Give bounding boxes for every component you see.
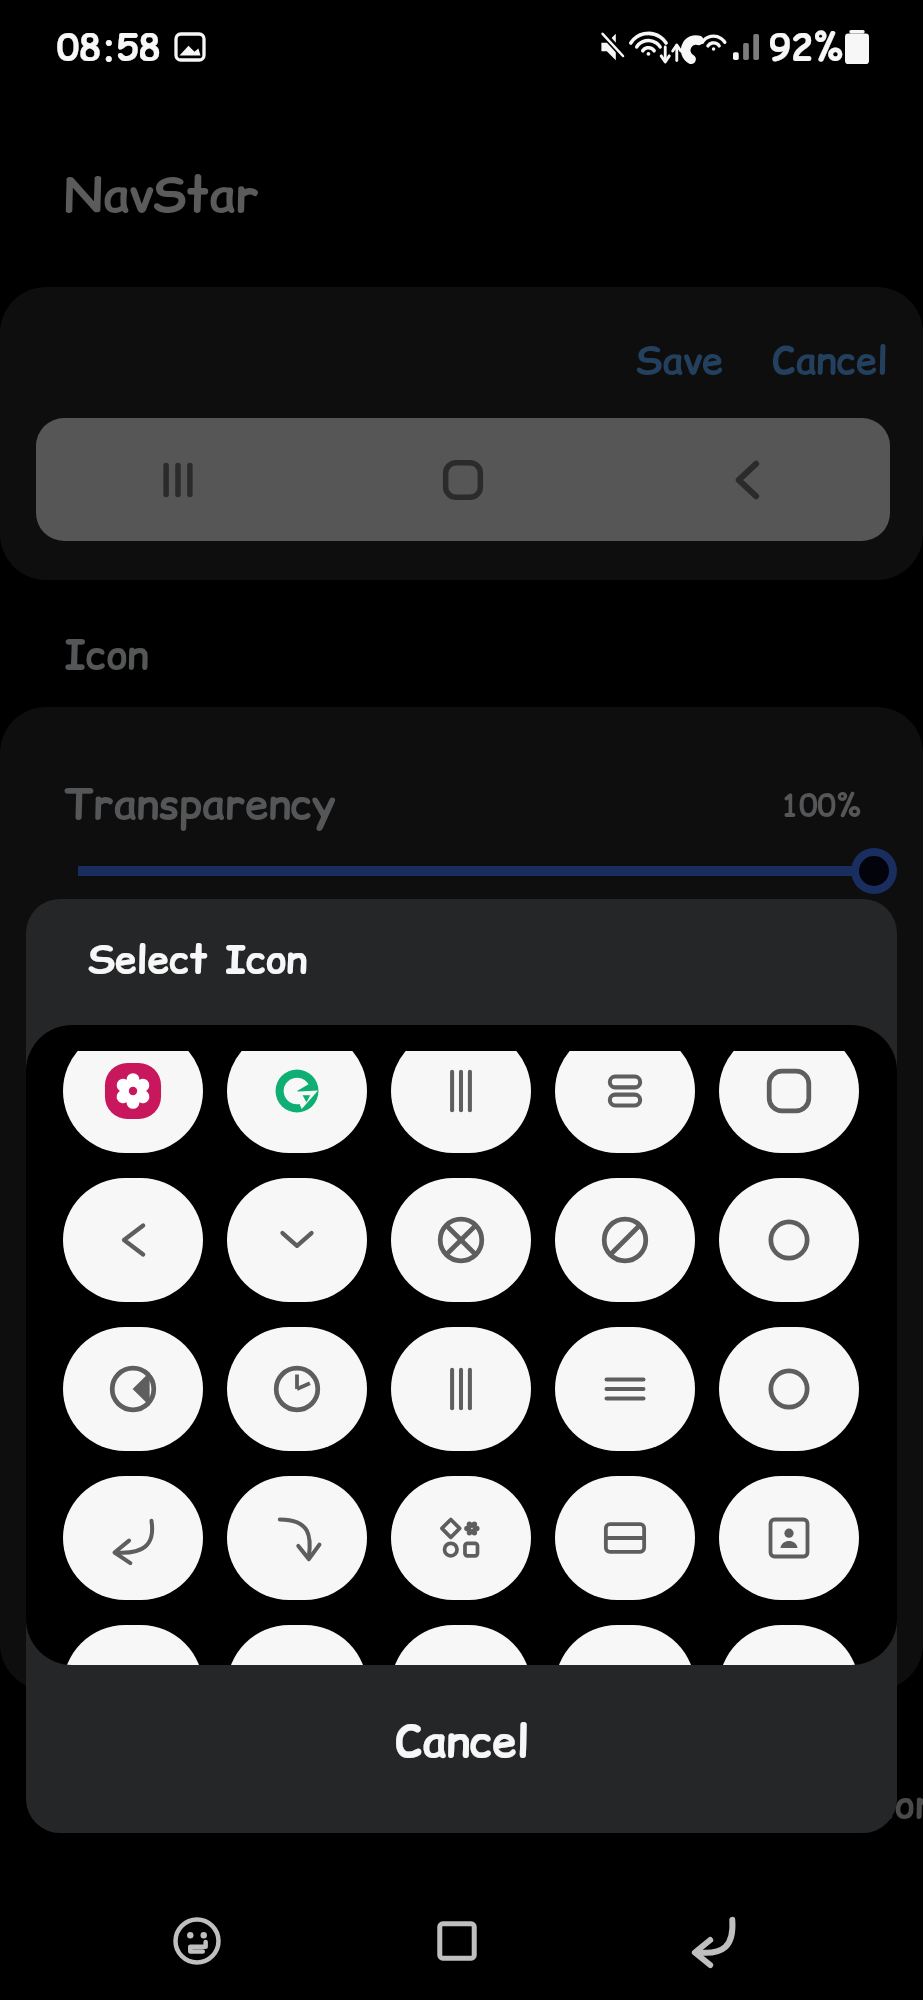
button[interactable]: Home: [320, 418, 605, 541]
button[interactable]: Icon option 23: [391, 1625, 531, 1665]
button[interactable]: Icon option 8: [391, 1178, 531, 1302]
button[interactable]: Icon option 17: [227, 1476, 367, 1600]
button[interactable]: Icon option 6: [63, 1178, 203, 1302]
button[interactable]: Icon option 4: [555, 1051, 695, 1153]
staticText: Save: [636, 334, 724, 387]
staticText: 08:58: [57, 22, 161, 72]
staticText: Cancel: [772, 334, 888, 387]
button[interactable]: Icon option 20: [719, 1476, 859, 1600]
staticText: NavStar: [64, 161, 259, 228]
staticText: Icon: [64, 627, 149, 683]
button[interactable]: Icon option 22: [227, 1625, 367, 1665]
staticText: Background Color: [619, 1778, 923, 1831]
button[interactable]: Icon option 18: [391, 1476, 531, 1600]
button[interactable]: Save: [626, 328, 734, 393]
button[interactable]: Icon option 11: [63, 1327, 203, 1451]
button[interactable]: Back: [605, 418, 890, 541]
button[interactable]: Back: [650, 1876, 780, 2000]
button[interactable]: Icon option 14: [555, 1327, 695, 1451]
button[interactable]: Icon option 10: [719, 1178, 859, 1302]
staticText: Select Icon: [88, 932, 307, 986]
staticText: 100%: [781, 784, 861, 826]
button[interactable]: Icon option 13: [391, 1327, 531, 1451]
staticText: Transparency: [64, 775, 336, 834]
button[interactable]: Icon option 2: [227, 1051, 367, 1153]
button[interactable]: Home: [392, 1876, 522, 2000]
staticText: 92%: [769, 22, 843, 72]
button[interactable]: Icon option 7: [227, 1178, 367, 1302]
button[interactable]: Icon option 9: [555, 1178, 695, 1302]
button[interactable]: Icon option 25: [719, 1625, 859, 1665]
button[interactable]: Icon option 21: [63, 1625, 203, 1665]
button[interactable]: Recents: [132, 1876, 262, 2000]
button[interactable]: Icon option 15: [719, 1327, 859, 1451]
button[interactable]: Icon option 3: [391, 1051, 531, 1153]
button[interactable]: Icon option 12: [227, 1327, 367, 1451]
button[interactable]: Recents: [36, 418, 320, 541]
button[interactable]: Cancel: [26, 1665, 897, 1833]
button[interactable]: Cancel: [762, 328, 898, 393]
staticText: Cancel: [395, 1711, 529, 1772]
button[interactable]: Icon option 5: [719, 1051, 859, 1153]
button[interactable]: Icon option 24: [555, 1625, 695, 1665]
button[interactable]: Icon option 19: [555, 1476, 695, 1600]
button[interactable]: Icon option 16: [63, 1476, 203, 1600]
button[interactable]: Icon option 1: [63, 1051, 203, 1153]
